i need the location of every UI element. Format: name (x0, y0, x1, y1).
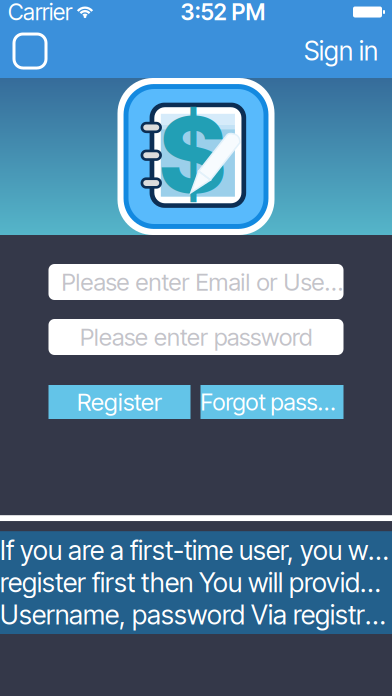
staticText: Sign in (304, 35, 378, 67)
staticText: Username, password Via registration (0, 599, 392, 631)
button[interactable]: Forgot password (200, 385, 343, 419)
button[interactable]: Menu (8, 26, 52, 76)
staticText: Carrier (8, 0, 72, 26)
button[interactable]: Please enter password (48, 319, 343, 355)
staticText: register first then You will provide you… (0, 566, 392, 599)
button[interactable]: Please enter Email or UserNa… (48, 264, 343, 300)
staticText: Please enter password (80, 322, 312, 351)
staticText: $ (159, 91, 225, 218)
staticText: 3:52 PM (180, 0, 265, 26)
staticText: Forgot password (200, 388, 343, 416)
button[interactable]: Register (48, 385, 190, 419)
staticText: Register (77, 387, 162, 416)
staticText: Please enter Email or UserNa… (61, 267, 343, 296)
button[interactable]: Sign in (298, 27, 384, 75)
staticText: If you are a first-time user, you will b… (0, 534, 392, 566)
